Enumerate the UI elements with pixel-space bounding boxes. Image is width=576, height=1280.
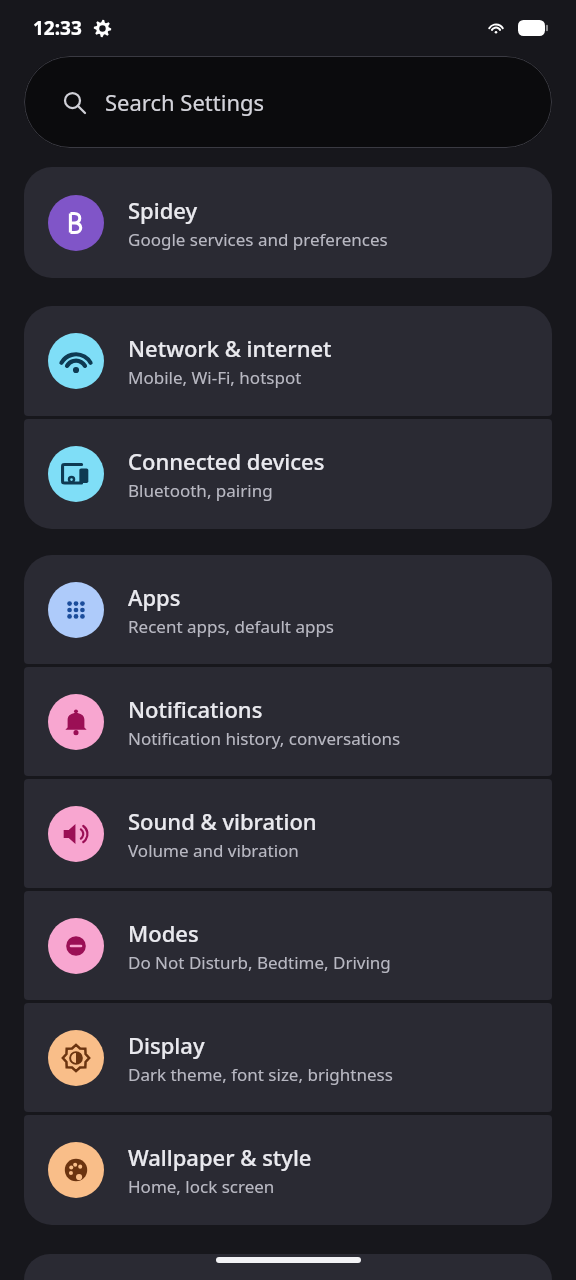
button[interactable]: Modes [24,891,552,1000]
staticText: Modes [128,918,199,948]
staticText: Apps [128,582,181,612]
staticText: Spidey [128,195,198,225]
button[interactable]: Wallpaper & style [24,1115,552,1225]
button[interactable]: Search Settings [24,56,552,148]
staticText: Notification history, conversations [128,727,401,750]
staticText: Do Not Disturb, Bedtime, Driving [128,951,391,974]
staticText: Notifications [128,694,263,724]
button[interactable]: Apps [24,555,552,664]
staticText: Recent apps, default apps [128,615,335,638]
staticText: Network & internet [128,333,332,363]
staticText: 12:33 [33,15,82,41]
button[interactable] [24,1254,552,1280]
button[interactable]: Network & internet [24,306,552,416]
staticText: Volume and vibration [128,839,299,862]
staticText: Mobile, Wi-Fi, hotspot [128,366,302,389]
button[interactable]: Sound & vibration [24,779,552,888]
staticText: Bluetooth, pairing [128,479,273,502]
staticText: Display [128,1030,205,1060]
staticText: Sound & vibration [128,806,317,836]
button[interactable]: Display [24,1003,552,1112]
button[interactable]: Notifications [24,667,552,776]
button[interactable]: Connected devices [24,419,552,529]
button[interactable]: Spidey [24,167,552,278]
staticText: Search Settings [105,87,265,117]
staticText: Connected devices [128,446,325,476]
staticText: Dark theme, font size, brightness [128,1063,393,1086]
staticText: Home, lock screen [128,1175,275,1198]
staticText: Wallpaper & style [128,1142,312,1172]
staticText: Google services and preferences [128,228,388,251]
